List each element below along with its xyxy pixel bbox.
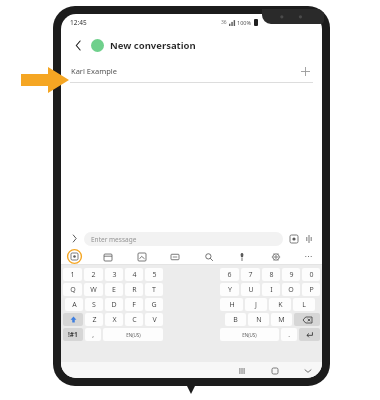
button[interactable]: Hide keyboard	[301, 364, 314, 377]
button[interactable]: Add recipient	[298, 64, 312, 78]
button[interactable]: Recents	[235, 364, 248, 377]
button[interactable]: EN(US)	[220, 328, 279, 341]
button[interactable]: P	[302, 283, 320, 296]
button[interactable]: Emoji	[287, 232, 300, 245]
button[interactable]: EN(US)	[103, 328, 163, 341]
staticText: 3	[112, 270, 117, 280]
staticText: Q	[70, 285, 76, 295]
staticText: 1	[70, 270, 75, 280]
button[interactable]: Settings	[268, 249, 283, 264]
button[interactable]: Karl Example	[61, 60, 322, 82]
staticText: U	[248, 285, 254, 295]
button[interactable]: B	[225, 313, 246, 326]
staticText: W	[90, 285, 97, 295]
staticText: A	[72, 300, 77, 310]
button[interactable]: 1	[63, 268, 82, 281]
staticText: ,	[92, 330, 94, 339]
staticText: G	[151, 300, 157, 310]
button[interactable]: Stickers	[67, 249, 82, 264]
button[interactable]: Calendar	[100, 249, 115, 264]
button[interactable]: Search	[201, 249, 216, 264]
button[interactable]: 7	[241, 268, 260, 281]
button[interactable]: Back	[70, 37, 86, 53]
button[interactable]: GIF	[167, 249, 182, 264]
button[interactable]: Home	[268, 364, 281, 377]
staticText: 0	[309, 270, 314, 280]
staticText: L	[302, 300, 306, 310]
button[interactable]: J	[245, 298, 267, 311]
staticText: B	[233, 315, 238, 325]
button[interactable]: 9	[282, 268, 300, 281]
staticText: Y	[228, 285, 232, 295]
staticText: E	[112, 285, 116, 295]
staticText: T	[152, 285, 156, 295]
button[interactable]: Voice	[302, 232, 315, 245]
button[interactable]: .	[281, 328, 297, 341]
button[interactable]: Q	[63, 283, 82, 296]
button[interactable]: U	[241, 283, 260, 296]
button[interactable]: Enter message	[84, 232, 283, 246]
button[interactable]: C	[125, 313, 143, 326]
staticText: New conversation	[110, 39, 196, 52]
staticText: 7	[248, 270, 253, 280]
button[interactable]: 4	[125, 268, 143, 281]
button[interactable]: T	[145, 283, 163, 296]
staticText: 5	[152, 270, 157, 280]
button[interactable]: M	[271, 313, 292, 326]
staticText: F	[132, 300, 136, 310]
button[interactable]: 6	[220, 268, 239, 281]
staticText: N	[256, 315, 262, 325]
button[interactable]: 0	[302, 268, 320, 281]
button[interactable]: 2	[84, 268, 103, 281]
button[interactable]: Shift	[63, 313, 83, 326]
button[interactable]: Image	[134, 249, 149, 264]
button[interactable]: 5	[145, 268, 163, 281]
button[interactable]: W	[84, 283, 103, 296]
button[interactable]: K	[269, 298, 291, 311]
staticText: 36	[221, 19, 227, 26]
button[interactable]: R	[125, 283, 143, 296]
button[interactable]: A	[65, 298, 83, 311]
staticText: Karl Example	[71, 66, 117, 76]
staticText: .	[288, 330, 290, 339]
button[interactable]: X	[105, 313, 123, 326]
button[interactable]: E	[105, 283, 123, 296]
staticText: S	[92, 300, 96, 310]
button[interactable]: Microphone	[234, 249, 249, 264]
button[interactable]: Y	[220, 283, 239, 296]
staticText: 9	[289, 270, 294, 280]
button[interactable]: H	[220, 298, 243, 311]
button[interactable]: I	[262, 283, 280, 296]
button[interactable]: Z	[85, 313, 103, 326]
staticText: D	[111, 300, 117, 310]
button[interactable]: Enter	[299, 328, 320, 341]
staticText: V	[152, 315, 157, 325]
staticText: X	[112, 315, 117, 325]
button[interactable]: O	[282, 283, 300, 296]
staticText: !#1	[68, 330, 78, 339]
button[interactable]: ,	[85, 328, 101, 341]
button[interactable]: Expand	[68, 232, 81, 245]
button[interactable]: G	[145, 298, 163, 311]
staticText: M	[278, 315, 285, 325]
staticText: 2	[91, 270, 96, 280]
button[interactable]: V	[145, 313, 163, 326]
button[interactable]: 3	[105, 268, 123, 281]
button[interactable]: L	[293, 298, 315, 311]
staticText: 100%	[237, 19, 252, 26]
button[interactable]: S	[85, 298, 103, 311]
button[interactable]: !#1	[63, 328, 83, 341]
staticText: 12:45	[70, 18, 87, 27]
staticText: I	[270, 285, 273, 295]
button[interactable]: D	[105, 298, 123, 311]
button[interactable]: Backspace	[294, 313, 320, 326]
button[interactable]: More options	[301, 249, 316, 264]
button[interactable]: F	[125, 298, 143, 311]
staticText: K	[278, 300, 283, 310]
staticText: C	[132, 315, 137, 325]
staticText: Enter message	[91, 235, 137, 244]
staticText: EN(US)	[126, 332, 141, 338]
staticText: Z	[92, 315, 97, 325]
button[interactable]: 8	[262, 268, 280, 281]
button[interactable]: N	[248, 313, 269, 326]
